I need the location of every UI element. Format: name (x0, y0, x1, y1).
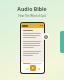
staticText: Audio Bible (17, 5, 47, 12)
button[interactable]: Previous (25, 67, 28, 70)
button[interactable]: Play (30, 65, 36, 71)
button[interactable]: Add bookmark (42, 33, 49, 40)
button[interactable] (21, 23, 44, 28)
button[interactable]: Next (37, 67, 40, 70)
staticText: Hear The Word of God (18, 14, 46, 18)
